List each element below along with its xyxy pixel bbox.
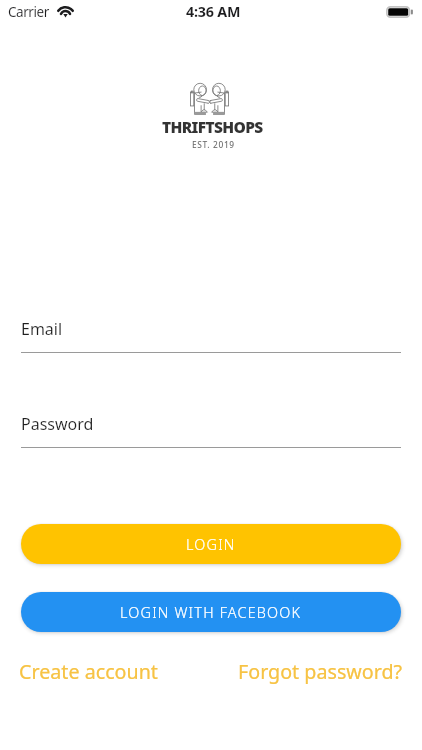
- staticText: Carrier: [8, 3, 49, 21]
- button[interactable]: Password: [21, 413, 401, 448]
- staticText: THRIFTSHOPS: [162, 116, 263, 137]
- staticText: LOGIN WITH FACEBOOK: [120, 603, 302, 623]
- staticText: 4:36 AM: [186, 2, 241, 21]
- other: Wi-Fi: [57, 5, 74, 19]
- button[interactable]: Create account: [19, 658, 158, 685]
- other: Battery full: [386, 6, 413, 18]
- staticText: Email: [21, 318, 63, 340]
- staticText: EST. 2019: [192, 139, 235, 150]
- button[interactable]: LOGIN WITH FACEBOOK: [21, 592, 401, 632]
- staticText: LOGIN: [186, 535, 236, 555]
- staticText: Password: [21, 413, 94, 435]
- button[interactable]: Forgot password?: [238, 658, 403, 685]
- button[interactable]: Email: [21, 318, 401, 353]
- button[interactable]: LOGIN: [21, 524, 401, 564]
